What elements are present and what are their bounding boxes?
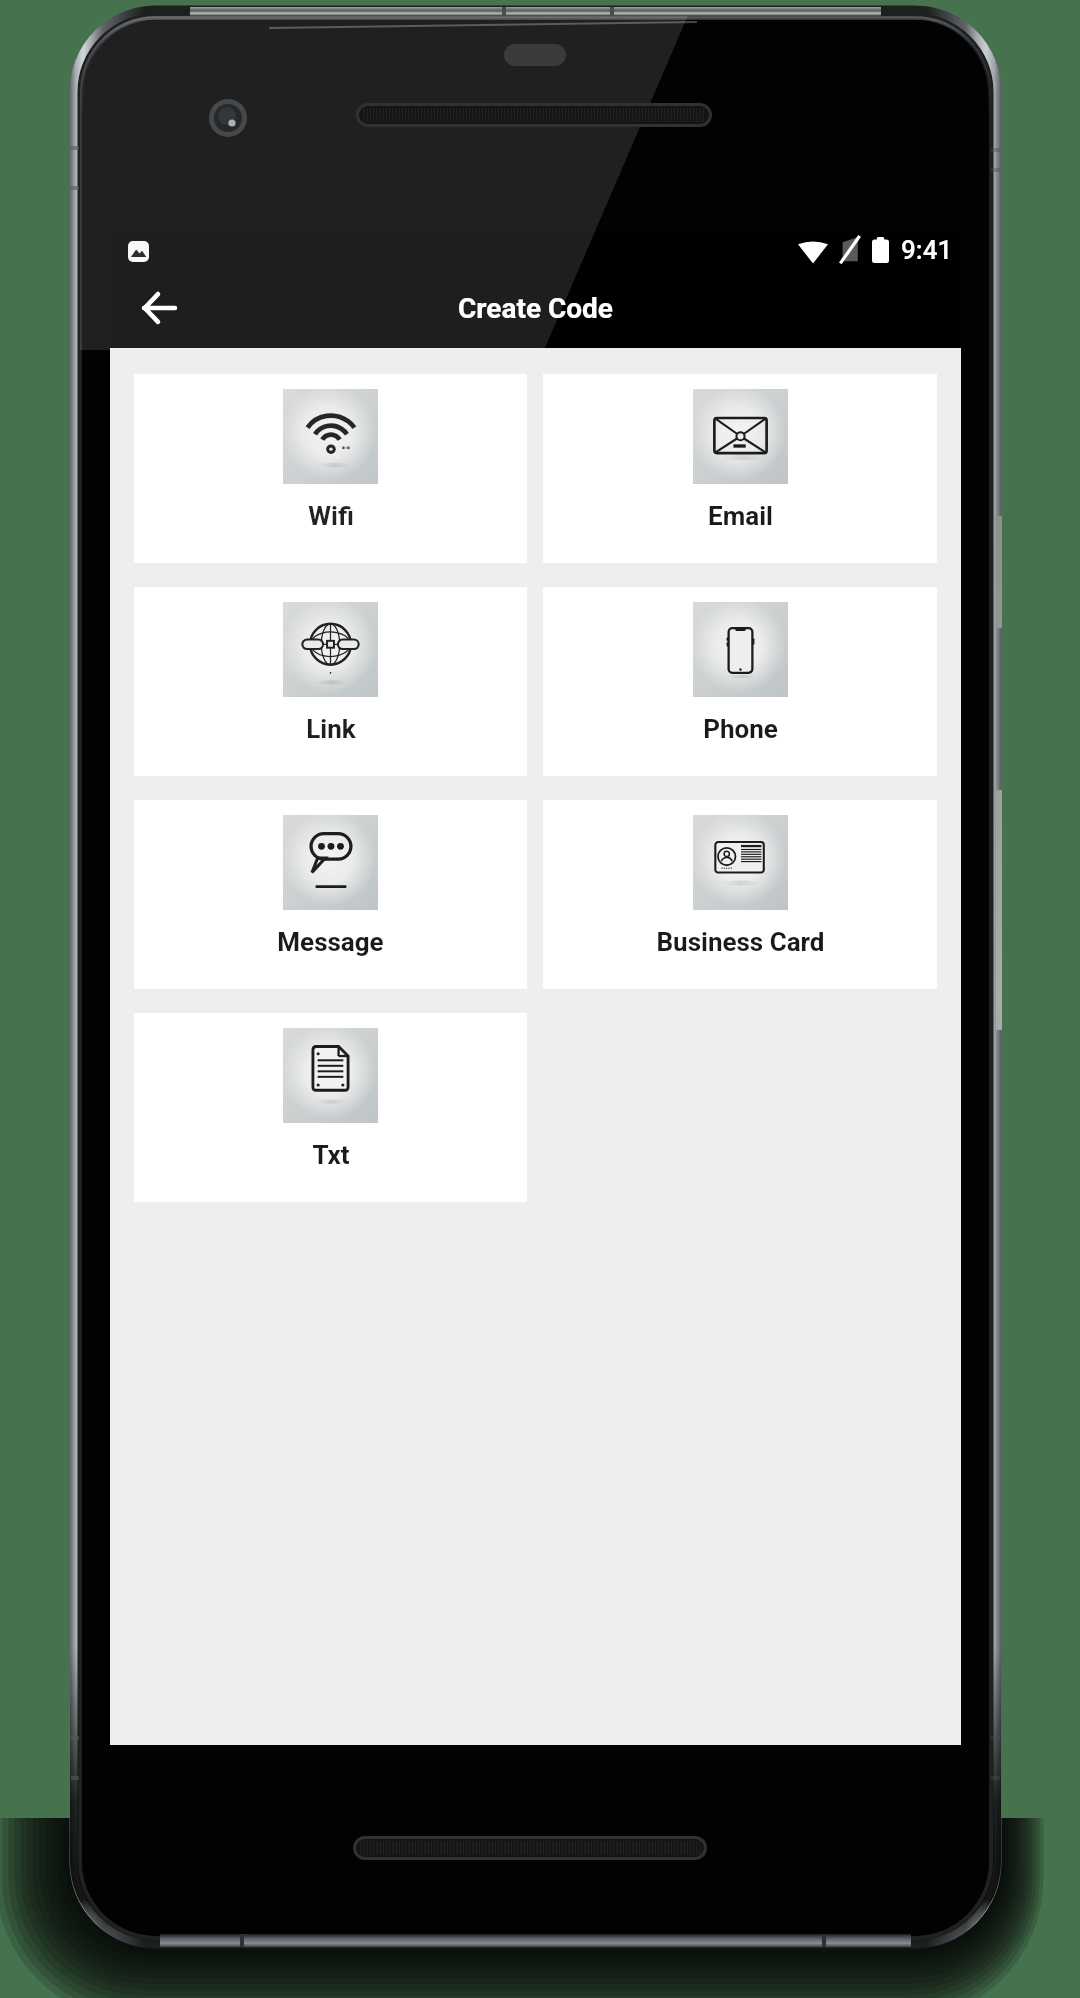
button[interactable]: Link xyxy=(134,587,527,776)
button[interactable]: Back xyxy=(130,279,188,337)
staticText: Wifi xyxy=(308,501,354,531)
staticText: Email xyxy=(708,501,773,531)
button[interactable]: Business Card xyxy=(543,800,937,989)
staticText: 9:41 xyxy=(901,235,953,265)
button[interactable]: Phone xyxy=(543,587,937,776)
staticText: Phone xyxy=(703,714,778,744)
staticText: Txt xyxy=(312,1140,350,1170)
staticText: Create Code xyxy=(458,292,613,325)
button[interactable]: Email xyxy=(543,374,937,563)
button[interactable]: Message xyxy=(134,800,527,989)
staticText: Business Card xyxy=(656,927,825,957)
button[interactable]: Txt xyxy=(134,1013,527,1202)
button[interactable]: Screenshot xyxy=(128,241,149,262)
button[interactable]: Wifi xyxy=(134,374,527,563)
staticText: Message xyxy=(277,927,384,957)
staticText: Link xyxy=(306,714,356,744)
